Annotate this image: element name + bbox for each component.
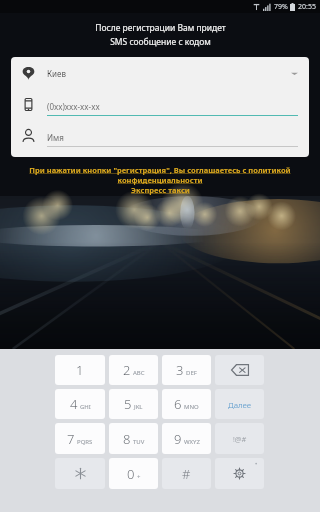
staticText: 4 [70, 395, 78, 413]
staticText: Экспресс такси [131, 185, 190, 195]
button[interactable]: 1 [55, 355, 105, 385]
staticText: 2 [123, 361, 131, 379]
button[interactable]: При нажатии кнопки "регистрация", Вы сог… [0, 165, 320, 195]
staticText: 0 [127, 465, 135, 483]
staticText: 1 [76, 361, 84, 379]
staticText: 5 [124, 395, 132, 413]
button[interactable]: 0 [109, 458, 158, 489]
staticText: (0xx)xxx-xx-xx [47, 101, 100, 112]
staticText: При нажатии кнопки "регистрация", Вы сог… [4, 165, 316, 185]
staticText: DEF [186, 369, 197, 377]
staticText: ABC [133, 369, 145, 377]
staticText: 6 [174, 395, 182, 413]
staticText: PQRS [77, 438, 93, 446]
button[interactable]: 3 [162, 355, 211, 385]
staticText: 3 [176, 361, 184, 379]
button[interactable]: (0xx)xxx-xx-xx [22, 89, 298, 120]
staticText: 7 [67, 430, 75, 448]
staticText: 20:55 [298, 2, 316, 12]
staticText: JKL [134, 403, 143, 411]
staticText: TUV [133, 438, 145, 446]
staticText: 9 [174, 430, 182, 448]
staticText: WXYZ [184, 438, 200, 446]
button[interactable]: Далее [215, 389, 264, 419]
button[interactable]: Киев [22, 57, 298, 89]
button[interactable]: Имя [22, 120, 298, 151]
button[interactable]: 4 [55, 389, 105, 419]
staticText: Далее [228, 399, 252, 410]
button[interactable]: 5 [109, 389, 158, 419]
staticText: GHI [80, 403, 91, 411]
staticText: # [182, 465, 191, 483]
button[interactable]: Settings [215, 458, 264, 489]
button[interactable]: # [162, 458, 211, 489]
button[interactable]: !@# [215, 423, 264, 454]
staticText: 79% [274, 2, 288, 12]
staticText: После регистрации Вам придет [95, 22, 226, 34]
staticText: 8 [123, 430, 131, 448]
button[interactable]: 6 [162, 389, 211, 419]
button[interactable]: 8 [109, 423, 158, 454]
button[interactable]: Star [55, 458, 105, 489]
staticText: Имя [47, 132, 64, 143]
button[interactable]: 7 [55, 423, 105, 454]
button[interactable]: Backspace [215, 355, 264, 385]
staticText: !@# [233, 434, 247, 444]
staticText: SMS сообщение с кодом [110, 36, 211, 48]
button[interactable]: 2 [109, 355, 158, 385]
button[interactable]: 9 [162, 423, 211, 454]
staticText: + [137, 473, 141, 481]
staticText: MNO [184, 403, 199, 411]
staticText: Киев [47, 68, 66, 79]
